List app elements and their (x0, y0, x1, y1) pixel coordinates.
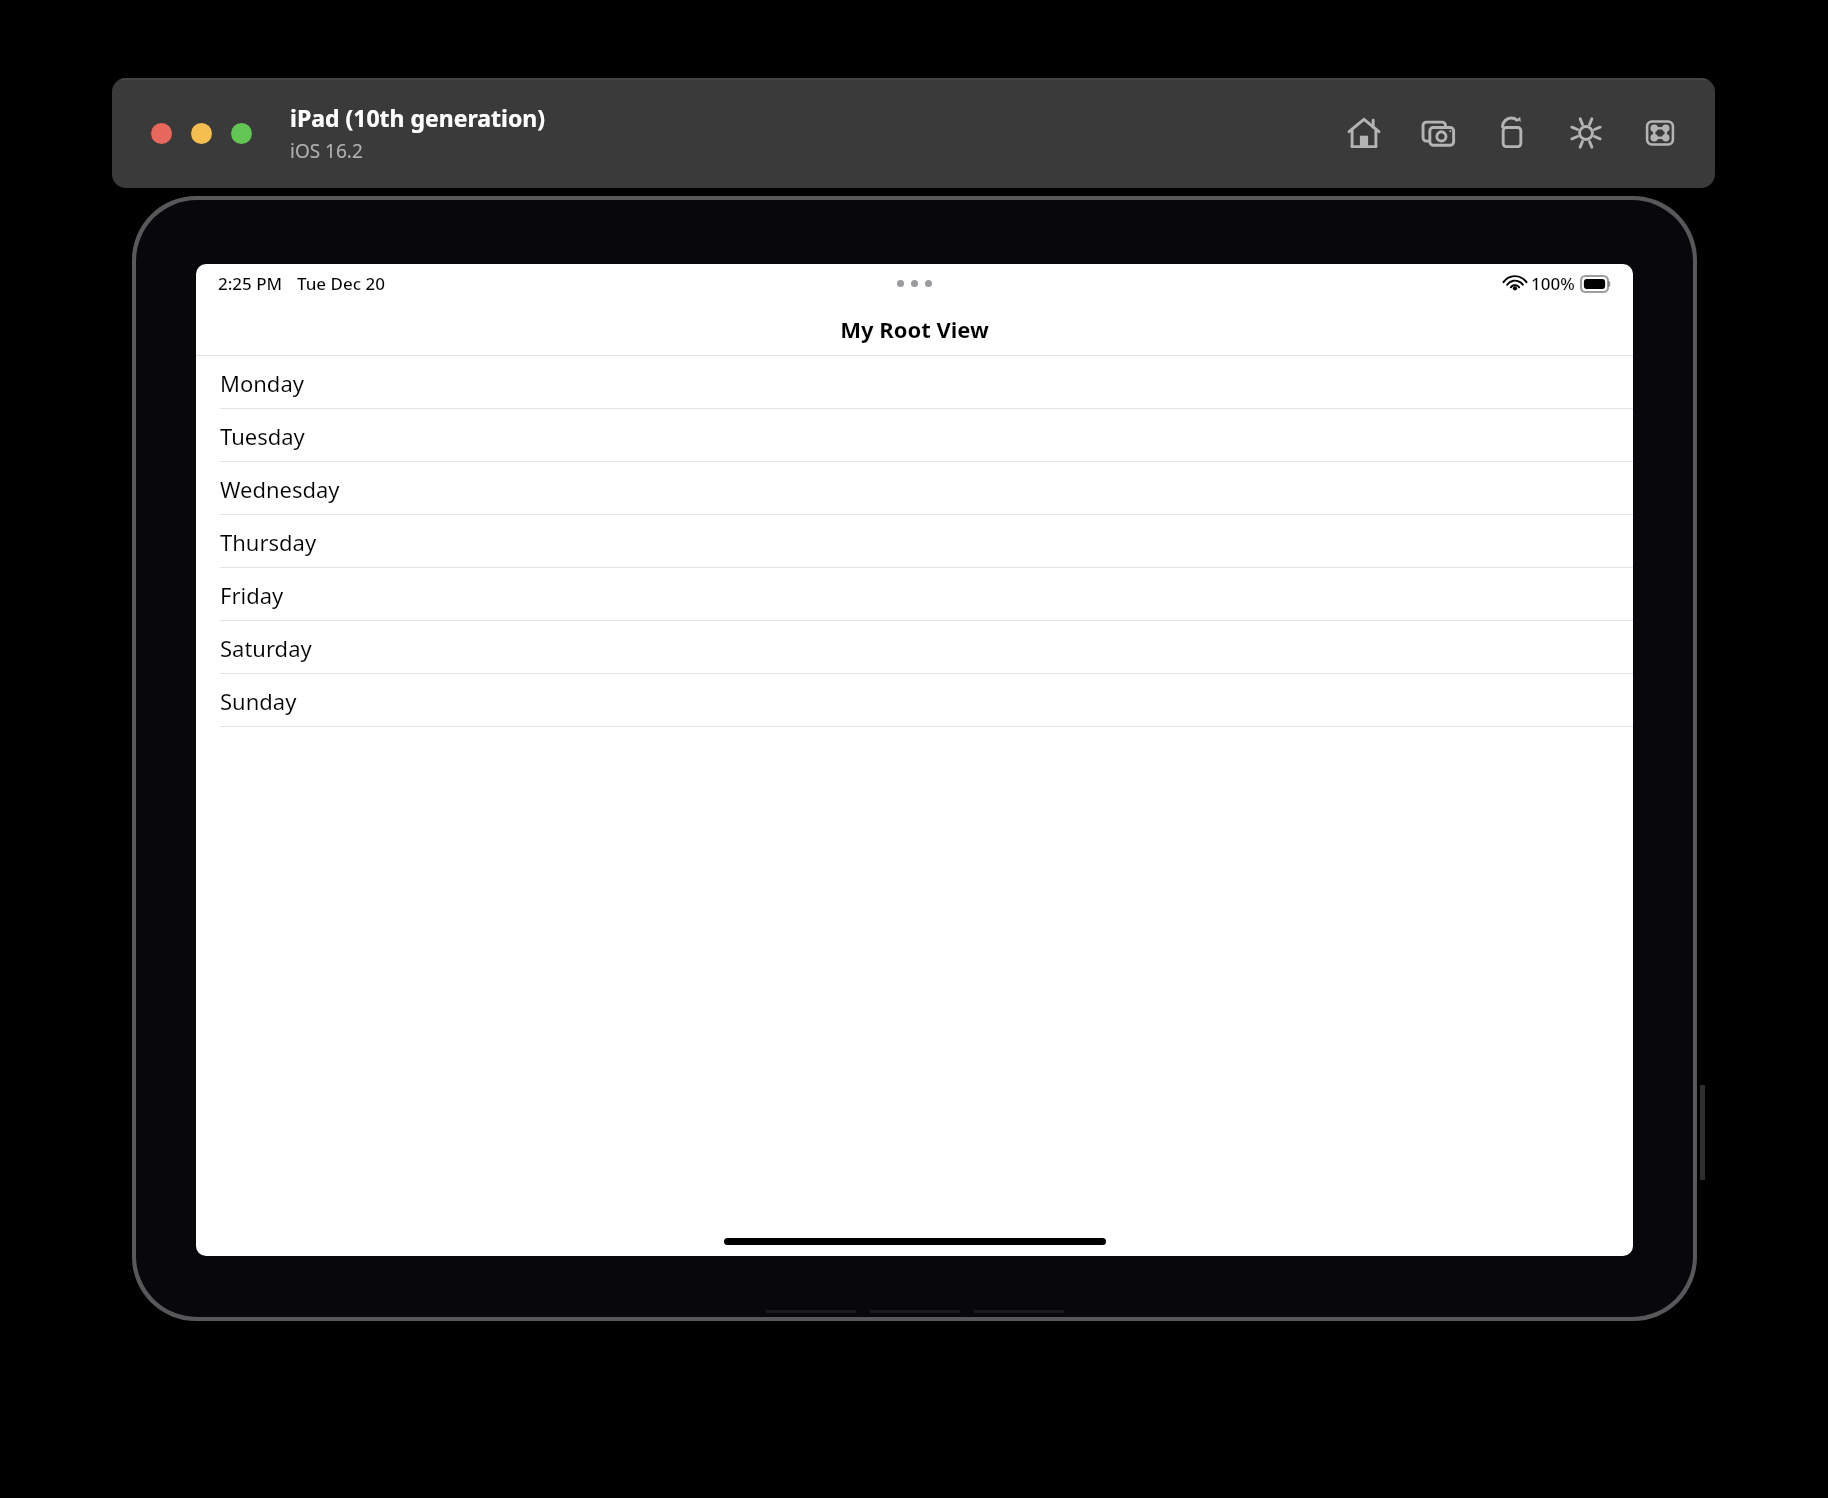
button[interactable]: Thursday (196, 515, 1633, 568)
button[interactable]: Maximize (231, 123, 252, 144)
staticText: Tuesday (220, 421, 305, 451)
button[interactable]: Monday (196, 356, 1633, 409)
staticText: Saturday (220, 633, 312, 663)
button[interactable]: Saturday (196, 621, 1633, 674)
button[interactable]: Home (1341, 110, 1387, 156)
staticText: Wednesday (220, 474, 340, 504)
button[interactable]: Screenshot (1415, 110, 1461, 156)
button[interactable]: Tuesday (196, 409, 1633, 462)
button[interactable]: Rotate (1489, 110, 1535, 156)
button[interactable]: Brightness (1563, 110, 1609, 156)
button[interactable]: Sunday (196, 674, 1633, 727)
button[interactable]: Close (151, 123, 172, 144)
staticText: iPad (10th generation) (290, 102, 546, 133)
staticText: Friday (220, 580, 284, 610)
staticText: Sunday (220, 686, 297, 716)
staticText: 2:25 PM (218, 272, 283, 295)
button[interactable]: Minimize (191, 123, 212, 144)
button[interactable]: Keyboard shortcuts (1637, 110, 1683, 156)
staticText: My Root View (840, 314, 989, 344)
button[interactable]: Friday (196, 568, 1633, 621)
staticText: Tue Dec 20 (297, 272, 385, 295)
staticText: 100% (1531, 272, 1575, 295)
button[interactable]: Wednesday (196, 462, 1633, 515)
staticText: iOS 16.2 (290, 138, 363, 164)
staticText: Monday (220, 368, 304, 398)
staticText: Thursday (220, 527, 317, 557)
